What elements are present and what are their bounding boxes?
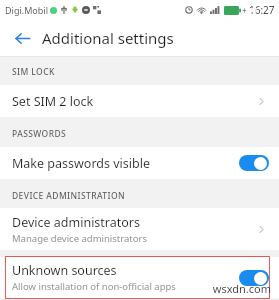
button[interactable]: Unknown sources xyxy=(0,257,279,298)
staticText: + xyxy=(242,5,247,16)
button[interactable]: Toggle on xyxy=(239,155,269,171)
staticText: Manage device administrators xyxy=(12,232,148,245)
button[interactable]: Make passwords visible xyxy=(0,147,279,179)
staticText: Digi.Mobil xyxy=(5,4,48,16)
staticText: Unknown sources xyxy=(12,262,117,279)
staticText: Make passwords visible xyxy=(12,155,150,172)
button[interactable]: Toggle on xyxy=(239,270,269,286)
staticText: 16:27 xyxy=(249,3,275,17)
staticText: Additional settings xyxy=(42,28,174,48)
staticText: DEVICE ADMINISTRATION xyxy=(12,190,125,202)
staticText: SIM LOCK xyxy=(12,66,55,78)
button[interactable]: Back xyxy=(8,24,36,52)
button[interactable]: Device administrators xyxy=(0,208,279,250)
staticText: wsxdn.com xyxy=(212,281,271,296)
staticText: PASSWORDS xyxy=(12,128,67,140)
button[interactable]: Set SIM 2 lock xyxy=(0,85,279,117)
staticText: Device administrators xyxy=(12,214,141,231)
staticText: 83 xyxy=(250,6,257,14)
staticText: Set SIM 2 lock xyxy=(12,93,256,110)
staticText: Allow installation of non-official apps xyxy=(12,280,176,293)
